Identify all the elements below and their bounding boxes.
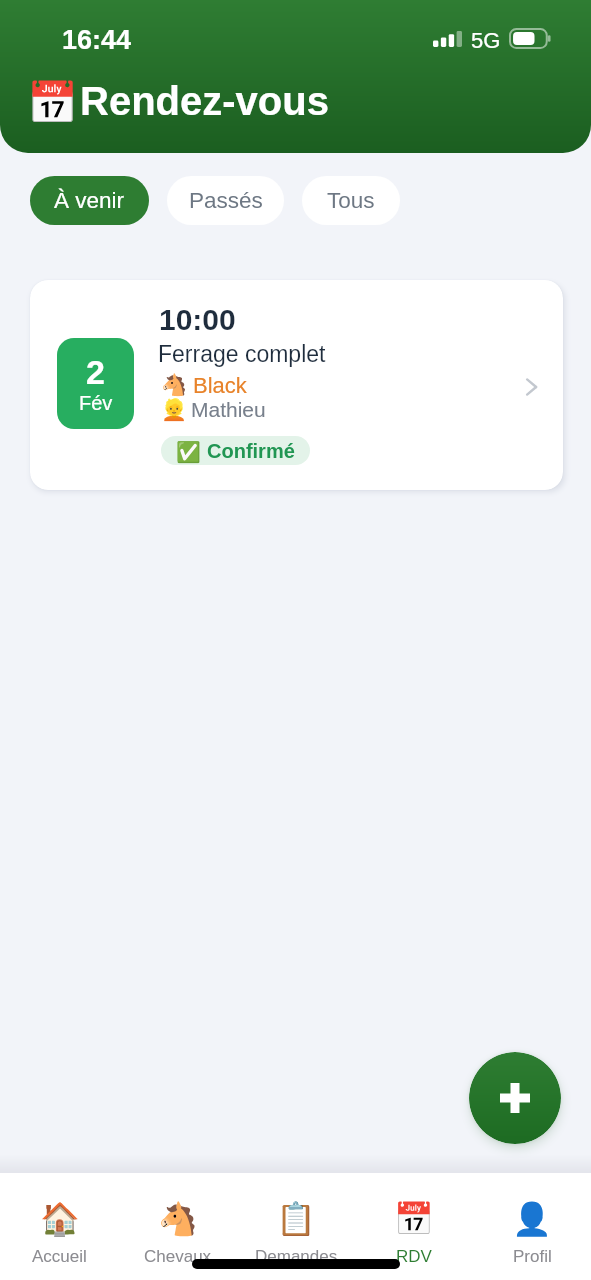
staticText: 🐴 xyxy=(161,373,188,398)
staticText: 📅 xyxy=(27,79,79,127)
button[interactable]: 👤 xyxy=(473,1173,591,1266)
staticText: 🐴 xyxy=(158,1200,198,1238)
staticText: Accueil xyxy=(32,1247,87,1266)
staticText: RDV xyxy=(396,1247,432,1266)
staticText: Passés xyxy=(189,188,263,213)
staticText: Confirmé xyxy=(207,440,295,462)
button[interactable]: 📋 xyxy=(237,1173,355,1266)
staticText: 10:00 xyxy=(159,303,236,337)
staticText: 👱 xyxy=(161,398,188,423)
button[interactable]: 📅 xyxy=(355,1173,473,1266)
staticText: Profil xyxy=(513,1247,552,1266)
button[interactable]: Passés xyxy=(167,176,284,225)
staticText: 👤 xyxy=(512,1200,552,1238)
staticText: 16:44 xyxy=(62,25,132,55)
staticText: 📋 xyxy=(276,1200,316,1238)
staticText: Rendez-vous xyxy=(80,79,329,124)
staticText: Mathieu xyxy=(191,398,266,421)
button[interactable]: 🐴 xyxy=(119,1173,237,1266)
button[interactable]: À venir xyxy=(30,176,149,225)
button[interactable]: Ajouter un rendez-vous xyxy=(469,1052,561,1144)
button[interactable]: 2 xyxy=(30,280,563,490)
staticText: 2 xyxy=(86,353,105,391)
staticText: Black xyxy=(193,373,247,398)
staticText: 📅 xyxy=(394,1200,434,1238)
staticText: Ferrage complet xyxy=(158,341,326,367)
staticText: Tous xyxy=(327,188,375,213)
button[interactable]: Tous xyxy=(302,176,400,225)
staticText: Chevaux xyxy=(144,1247,212,1266)
staticText: 🏠 xyxy=(40,1200,80,1238)
staticText: Fév xyxy=(79,392,113,414)
button[interactable]: 🏠 xyxy=(0,1173,119,1266)
staticText: Demandes xyxy=(255,1247,338,1266)
staticText: ✅ xyxy=(176,440,201,463)
staticText: À venir xyxy=(54,188,125,213)
staticText: 5G xyxy=(471,28,501,53)
